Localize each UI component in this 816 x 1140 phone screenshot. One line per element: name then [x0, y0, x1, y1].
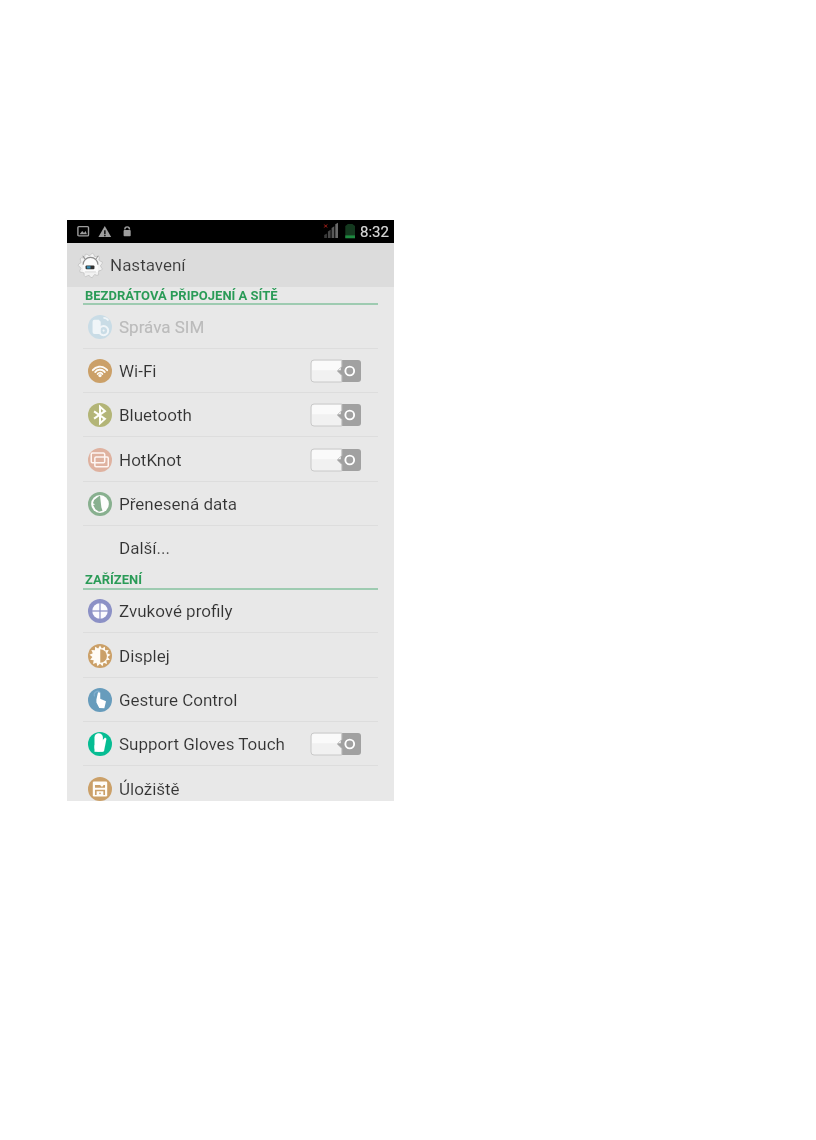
button[interactable]: Správa SIM [67, 305, 394, 349]
button[interactable]: Úložiště [67, 767, 394, 801]
button[interactable]: Gesture Control [67, 678, 394, 722]
staticText: Zvukové profily [119, 601, 233, 621]
staticText: Nastavení [110, 255, 186, 275]
staticText: Přenesená data [119, 494, 238, 514]
staticText: BEZDRÁTOVÁ PŘIPOJENÍ A SÍTĚ [85, 288, 278, 303]
button[interactable]: Toggle [311, 733, 361, 755]
button[interactable]: Toggle [311, 404, 361, 426]
button[interactable]: Wi-Fi [67, 349, 394, 393]
button[interactable]: Toggle [311, 449, 361, 471]
button[interactable]: Další... [67, 526, 394, 570]
staticText: Správa SIM [119, 317, 205, 337]
staticText: HotKnot [119, 450, 182, 470]
staticText: Gesture Control [119, 690, 238, 710]
staticText: ZAŘÍZENÍ [85, 572, 142, 587]
other: Settings [78, 253, 103, 278]
button[interactable]: Support Gloves Touch [67, 722, 394, 766]
button[interactable]: HotKnot [67, 438, 394, 482]
button[interactable]: Displej [67, 634, 394, 678]
staticText: 8:32 [360, 223, 389, 241]
button[interactable]: Přenesená data [67, 482, 394, 526]
staticText: Wi-Fi [119, 361, 157, 381]
button[interactable]: Bluetooth [67, 393, 394, 437]
staticText: Bluetooth [119, 405, 192, 425]
button[interactable]: Toggle [311, 360, 361, 382]
staticText: Úložiště [119, 779, 180, 799]
button[interactable]: Zvukové profily [67, 589, 394, 633]
staticText: Support Gloves Touch [119, 734, 285, 754]
staticText: Další... [119, 538, 170, 558]
staticText: Displej [119, 646, 170, 666]
